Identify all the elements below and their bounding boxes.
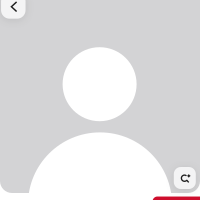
button[interactable]: Visual Look Up	[174, 167, 196, 189]
button[interactable]: Delete	[152, 196, 200, 200]
button[interactable]: Back	[1, 0, 26, 19]
